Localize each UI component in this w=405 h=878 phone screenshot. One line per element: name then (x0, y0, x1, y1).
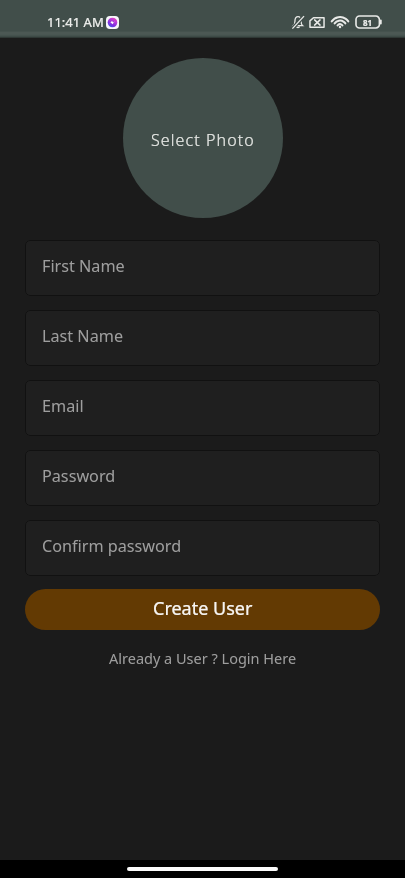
staticText: 81 (363, 17, 373, 28)
button[interactable]: Password (25, 450, 380, 506)
staticText: Already a User ? Login Here (109, 648, 297, 668)
button[interactable]: Email (25, 380, 380, 436)
button[interactable]: Already a User ? Login Here (103, 646, 303, 670)
staticText: Select Photo (151, 129, 255, 151)
button[interactable]: Confirm password (25, 520, 380, 576)
staticText: Last Name (42, 325, 124, 347)
staticText: Create User (153, 596, 253, 621)
staticText: First Name (42, 255, 125, 277)
staticText: Confirm password (42, 535, 182, 557)
button[interactable]: First Name (25, 240, 380, 296)
staticText: Password (42, 465, 116, 487)
button[interactable]: Select Photo (123, 58, 283, 218)
staticText: Email (42, 395, 84, 417)
staticText: 11:41 AM (47, 13, 104, 31)
button[interactable]: Last Name (25, 310, 380, 366)
button[interactable]: Create User (25, 589, 380, 630)
